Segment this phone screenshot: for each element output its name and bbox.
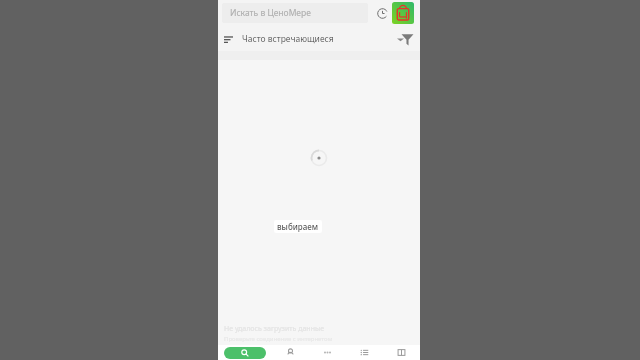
button[interactable]: Искать в ЦеноМере: [222, 3, 368, 23]
button[interactable]: ЦеноМер: [390, 0, 416, 26]
staticText: Не удалось загрузить данные: [224, 324, 325, 334]
button[interactable]: Ещё: [314, 345, 340, 360]
button[interactable]: Часто встречающиеся: [218, 27, 420, 51]
staticText: выбираем: [277, 221, 319, 232]
staticText: Часто встречающиеся: [242, 33, 334, 45]
button[interactable]: Профиль: [277, 345, 303, 360]
button[interactable]: История: [372, 3, 392, 23]
button[interactable]: Поиск: [224, 347, 266, 359]
button[interactable]: Фильтр: [397, 29, 417, 49]
button[interactable]: Каталог: [388, 345, 414, 360]
staticText: Искать в ЦеноМере: [230, 7, 311, 19]
staticText: Проверьте соединение с интернетом: [224, 335, 333, 343]
button[interactable]: Список: [351, 345, 377, 360]
